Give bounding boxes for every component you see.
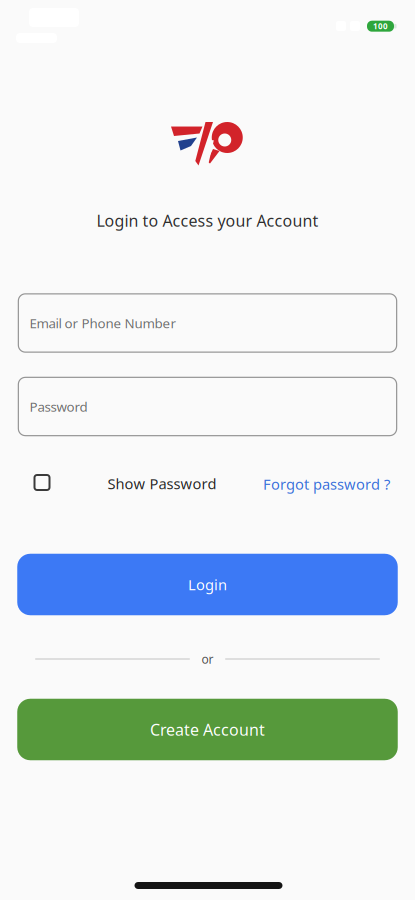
button[interactable]: Password xyxy=(18,377,397,436)
staticText: Login xyxy=(188,575,227,594)
button[interactable]: Login xyxy=(17,554,398,615)
staticText: Email or Phone Number xyxy=(29,314,176,332)
staticText: 100 xyxy=(373,21,388,31)
staticText: Create Account xyxy=(150,719,265,740)
staticText: Forgot password ? xyxy=(263,474,390,494)
button[interactable]: Show Password checkbox xyxy=(33,474,50,491)
staticText: Show Password xyxy=(107,474,216,493)
staticText: Password xyxy=(29,398,87,415)
staticText: Login to Access your Account xyxy=(96,210,318,231)
button[interactable]: Email or Phone Number xyxy=(18,293,397,353)
button[interactable]: Forgot password ? xyxy=(263,474,390,494)
staticText: or xyxy=(201,651,213,667)
button[interactable]: Create Account xyxy=(17,699,398,760)
